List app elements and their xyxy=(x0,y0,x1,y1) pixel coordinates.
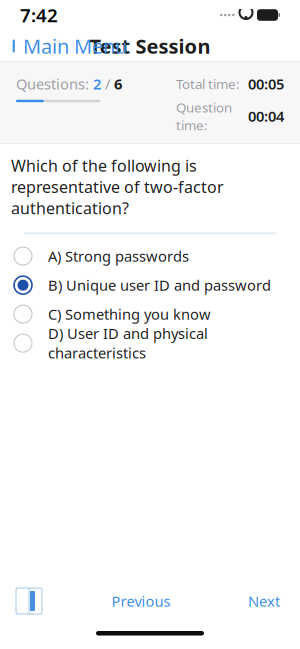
staticText: Test Session xyxy=(89,33,210,59)
staticText: Questions: xyxy=(16,74,89,93)
staticText: D) User ID and physical characteristics xyxy=(48,324,208,363)
staticText: / xyxy=(105,74,110,93)
staticText: Total time: xyxy=(176,75,240,93)
button[interactable]: Previous xyxy=(101,583,180,619)
staticText: B) Unique user ID and password xyxy=(48,275,271,295)
staticText: Main Menu xyxy=(23,33,127,59)
button[interactable]: A) Strong passwords xyxy=(0,242,300,271)
staticText: 00:05 xyxy=(248,74,284,93)
button[interactable]: D) User ID and physical characteristics xyxy=(0,329,300,358)
button[interactable]: Next xyxy=(238,583,290,619)
staticText: Which of the following is representative… xyxy=(11,155,224,219)
staticText: A) Strong passwords xyxy=(48,246,189,266)
staticText: Next xyxy=(248,591,280,611)
staticText: 7:42 xyxy=(20,3,58,27)
button[interactable]: C) Something you know xyxy=(0,300,300,329)
staticText: 00:04 xyxy=(248,106,284,126)
staticText: Question time: xyxy=(176,98,232,134)
staticText: C) Something you know xyxy=(48,304,211,324)
button[interactable]: B) Unique user ID and password xyxy=(0,271,300,300)
staticText: Previous xyxy=(111,591,170,611)
button[interactable]: Review xyxy=(0,582,44,620)
staticText: 2 xyxy=(93,74,101,93)
button[interactable]: Main Menu xyxy=(0,27,127,65)
staticText: 6 xyxy=(114,74,122,93)
